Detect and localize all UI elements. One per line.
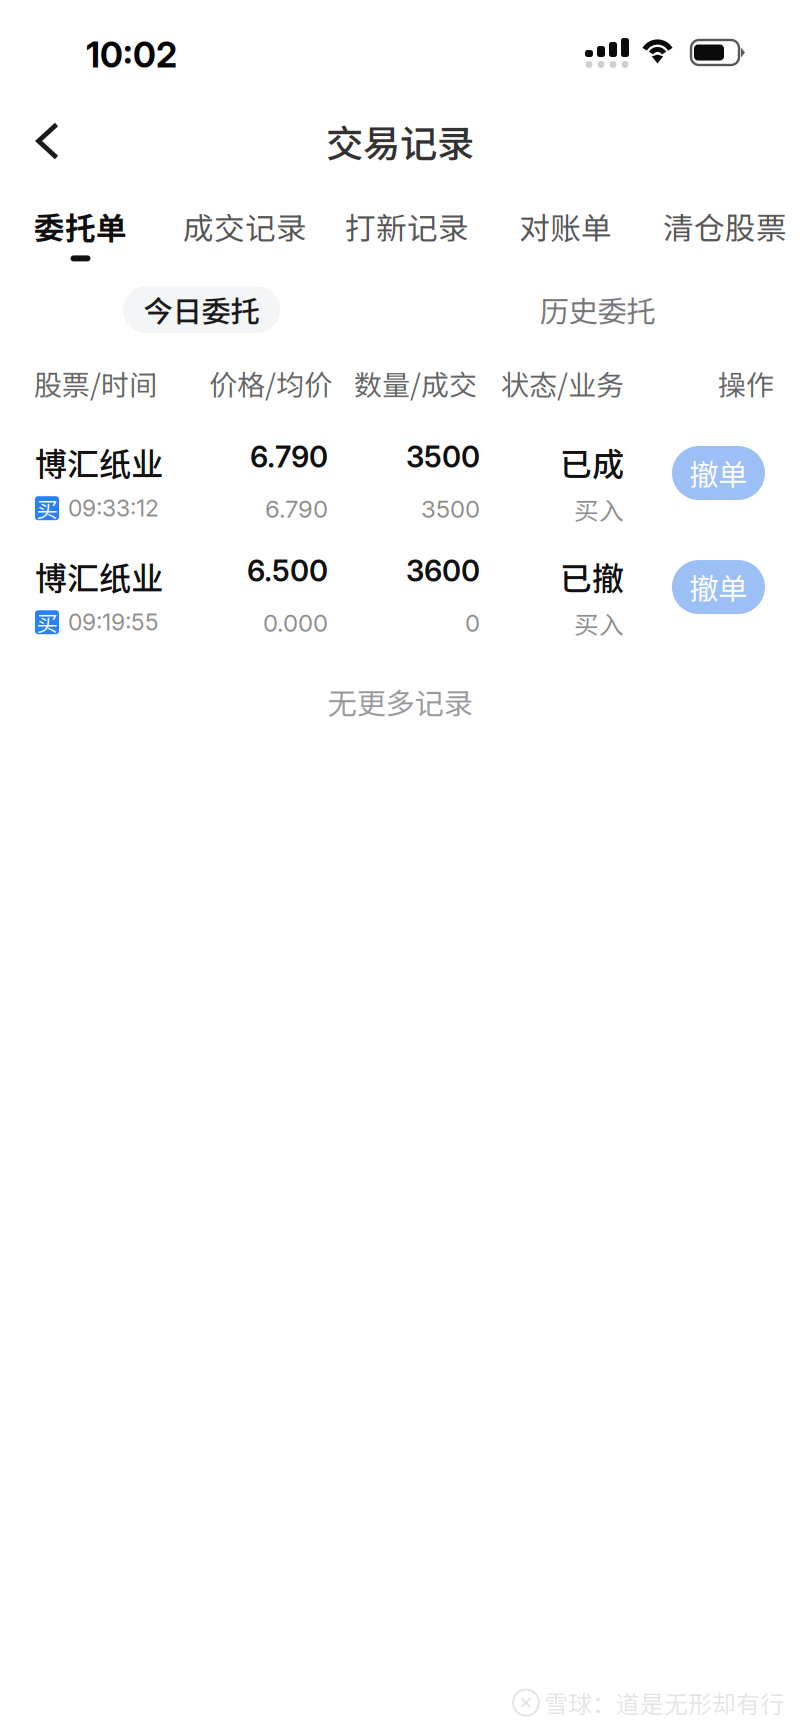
- staticText: 撤单: [689, 566, 747, 608]
- staticText: 3500: [406, 439, 480, 474]
- button[interactable]: 撤单: [672, 439, 765, 500]
- staticText: 买: [36, 607, 57, 638]
- staticText: 对账单: [519, 204, 612, 248]
- button[interactable]: 对账单: [519, 204, 612, 261]
- staticText: 撤单: [689, 452, 747, 494]
- staticText: 6.790: [265, 494, 328, 523]
- button[interactable]: 今日委托: [123, 286, 280, 333]
- button[interactable]: 委托单: [34, 204, 127, 261]
- staticText: 买入: [574, 605, 624, 641]
- staticText: 10:02: [86, 34, 177, 76]
- staticText: 0: [465, 608, 480, 637]
- staticText: 已成: [560, 439, 624, 485]
- staticText: 价格/均价: [209, 363, 332, 403]
- staticText: 股票/时间: [34, 363, 157, 403]
- staticText: 买: [36, 493, 57, 524]
- staticText: 3500: [421, 494, 480, 523]
- staticText: 历史委托: [539, 288, 655, 331]
- button[interactable]: 清仓股票: [663, 204, 787, 261]
- staticText: 6.500: [247, 553, 328, 589]
- staticText: 打新记录: [345, 204, 469, 248]
- staticText: 成交记录: [183, 204, 307, 248]
- staticText: 无更多记录: [327, 680, 472, 723]
- button[interactable]: 历史委托: [519, 286, 676, 333]
- staticText: 状态/业务: [501, 363, 624, 403]
- staticText: 交易记录: [326, 114, 474, 168]
- staticText: 委托单: [34, 204, 127, 248]
- staticText: 0.000: [263, 608, 328, 637]
- staticText: 今日委托: [143, 288, 259, 331]
- staticText: 清仓股票: [663, 204, 787, 248]
- staticText: 雪球：道是无形却有行: [544, 1685, 784, 1720]
- staticText: 操作: [718, 363, 774, 403]
- button[interactable]: 返回: [0, 102, 85, 180]
- staticText: 已撤: [560, 553, 624, 599]
- staticText: 博汇纸业: [35, 439, 163, 485]
- button[interactable]: 成交记录: [183, 204, 307, 261]
- staticText: 09:19:55: [68, 608, 159, 636]
- staticText: 09:33:12: [68, 494, 159, 522]
- staticText: 买入: [574, 491, 624, 527]
- staticText: 博汇纸业: [35, 553, 163, 599]
- button[interactable]: 打新记录: [345, 204, 469, 261]
- button[interactable]: 撤单: [672, 553, 765, 614]
- staticText: 6.790: [250, 439, 328, 474]
- staticText: 数量/成交: [354, 363, 477, 403]
- staticText: 3600: [406, 553, 480, 589]
